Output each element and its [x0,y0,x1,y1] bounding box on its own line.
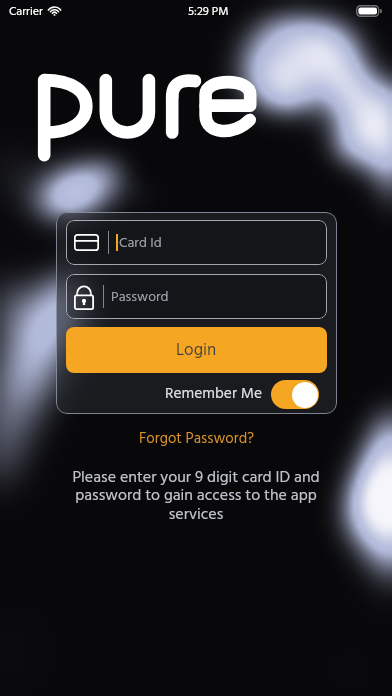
staticText: Login [176,337,217,364]
staticText: Password [111,286,169,308]
staticText: Remember Me [165,382,263,407]
button[interactable]: Card Id [66,220,327,265]
staticText: 5:29 PM [188,2,229,21]
staticText: Card Id [119,232,162,254]
staticText: Please enter your 9 digit card ID and pa… [58,465,334,528]
button[interactable]: Forgot Password? [129,424,264,454]
staticText: Forgot Password? [139,427,254,451]
button[interactable]: Login [66,327,327,373]
staticText: Carrier [9,2,43,21]
button[interactable]: Password [66,274,327,319]
button[interactable]: Remember Me toggle [271,380,319,409]
